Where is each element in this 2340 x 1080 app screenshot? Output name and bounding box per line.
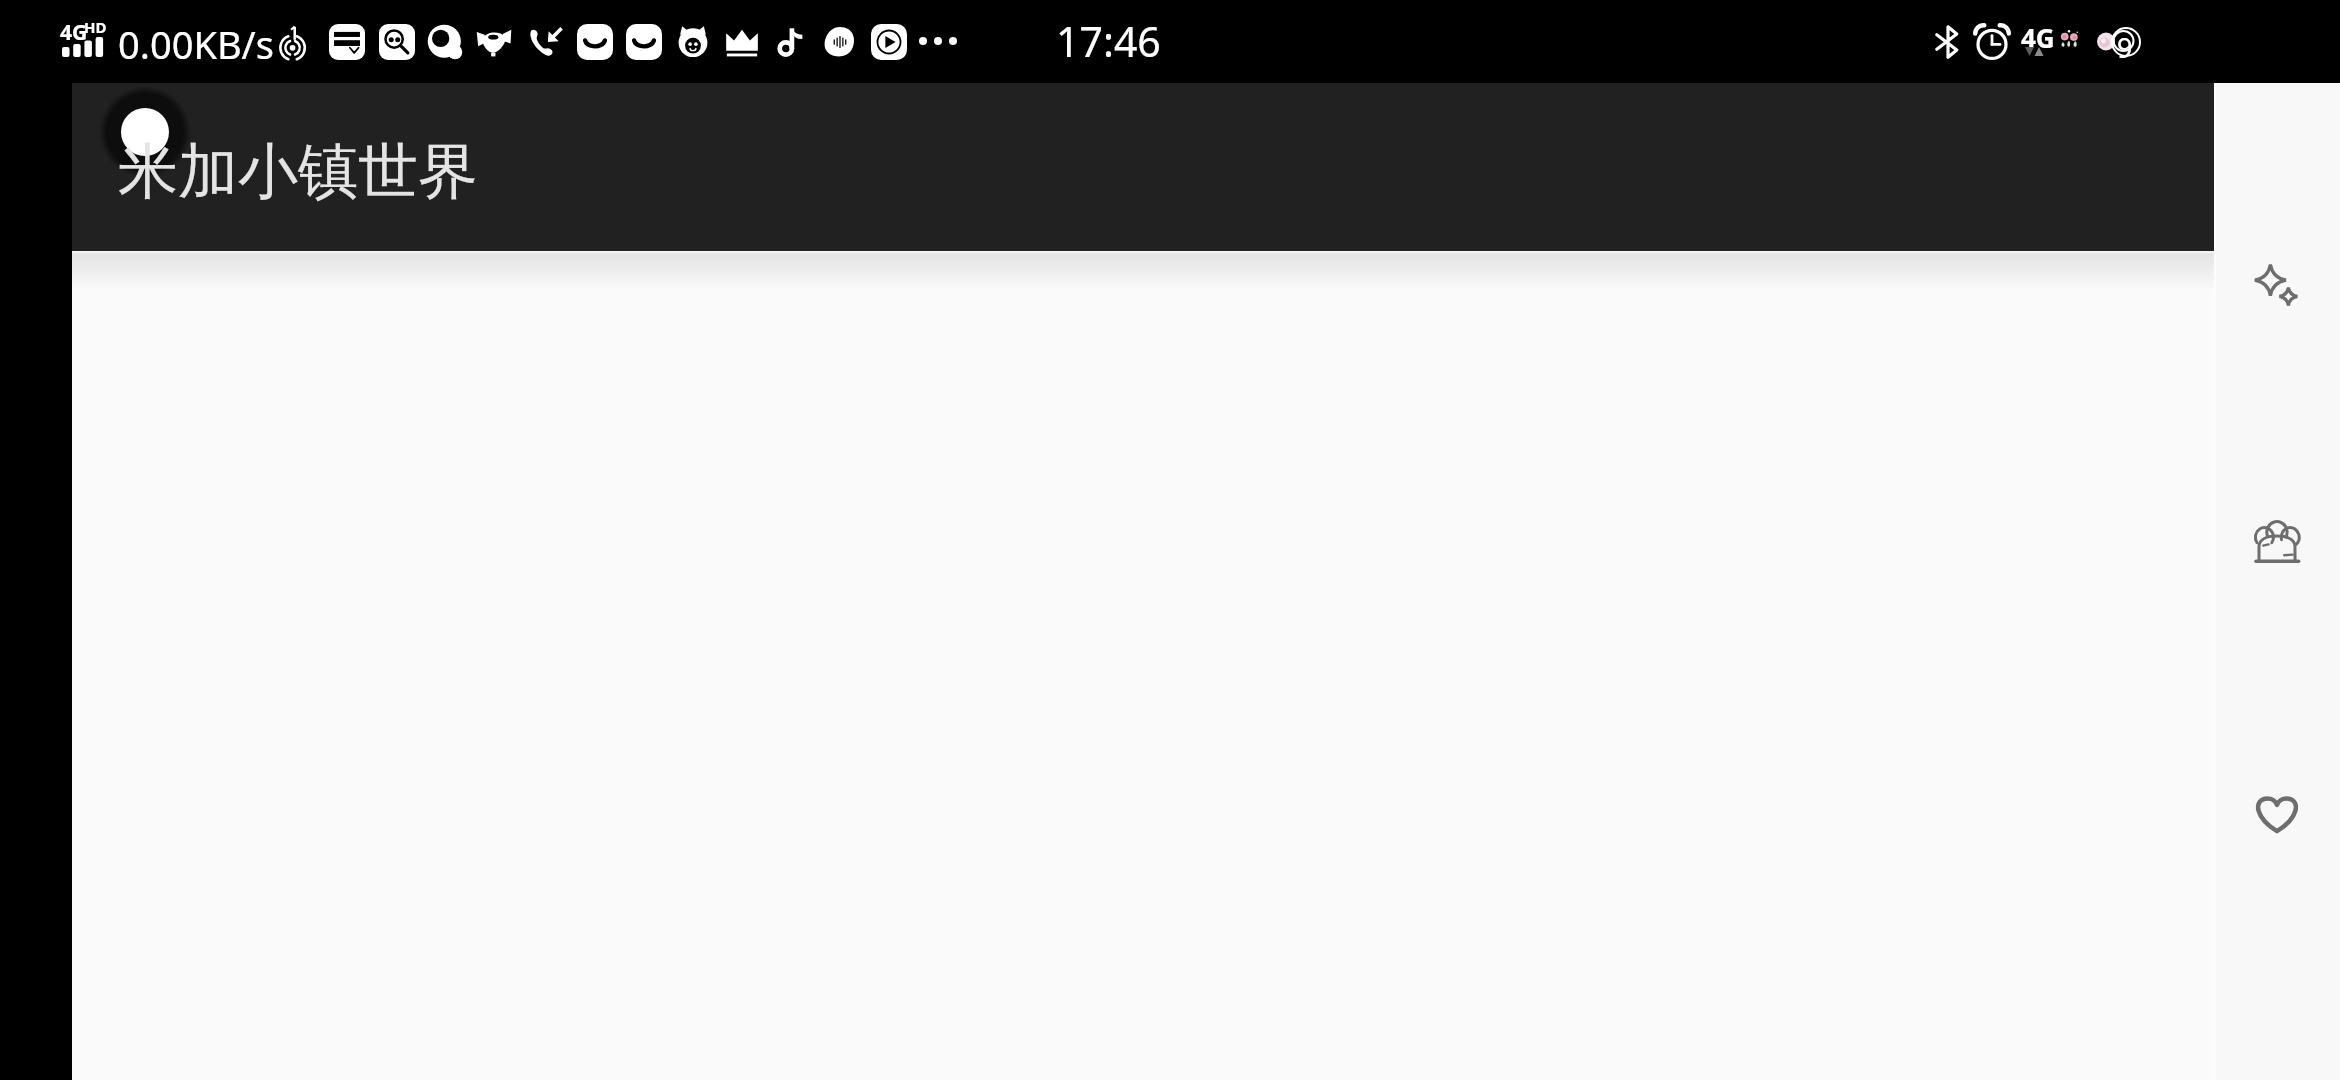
button[interactable]: Effects [2247,258,2307,318]
staticText: 0.00KB/s [118,18,274,70]
button[interactable]: Gifts [2247,512,2307,572]
button[interactable]: Favorite [2247,782,2307,842]
button[interactable]: Profile avatar [99,86,191,178]
staticText: 4G [60,18,88,47]
staticText: 4G [2021,20,2055,55]
staticText: 9 [2117,29,2133,66]
staticText: 米加小镇世界 [118,134,478,204]
staticText: 17:46 [1056,13,1161,69]
staticText: HD [84,17,107,37]
button[interactable]: 米加小镇世界 [118,134,478,204]
